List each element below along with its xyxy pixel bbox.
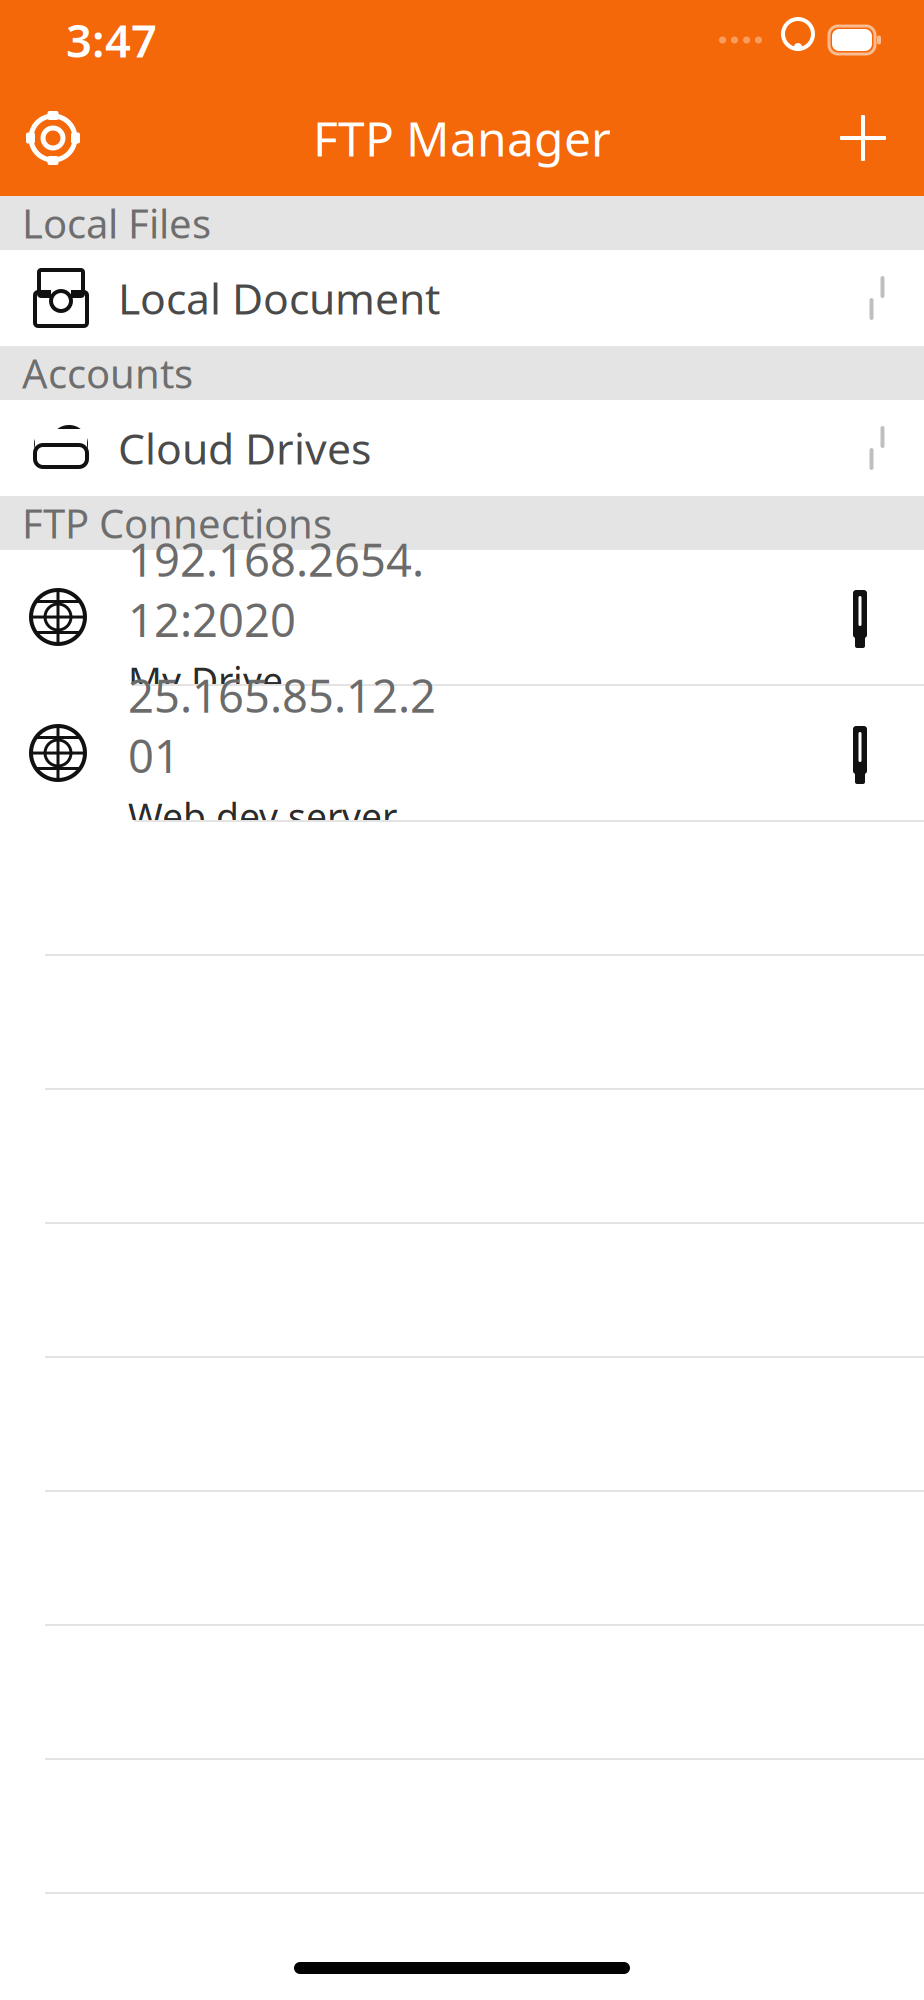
button[interactable]: 25.165.85.12.201 [0,686,812,820]
staticText: My Drive [128,655,283,705]
button[interactable]: Edit My Drive [812,550,908,684]
button[interactable]: Edit Web dev server [812,686,908,820]
button[interactable]: Cloud Drives [0,400,924,496]
staticText: Cloud Drives [118,420,371,476]
staticText: 192.168.2654.12:2020 [128,529,424,649]
staticText: Web dev server [128,791,397,841]
staticText: Local Document [118,270,440,326]
staticText: 3:47 [66,10,157,70]
button[interactable]: Local Document [0,250,924,346]
button[interactable]: Add connection [818,88,908,188]
staticText: Accounts [22,346,193,399]
button[interactable]: Settings [8,88,98,188]
button[interactable]: 192.168.2654.12:2020 [0,550,812,684]
staticText: 25.165.85.12.201 [128,665,436,785]
staticText: FTP Connections [22,496,332,549]
staticText: Local Files [22,196,211,249]
staticText: FTP Manager [313,106,611,170]
